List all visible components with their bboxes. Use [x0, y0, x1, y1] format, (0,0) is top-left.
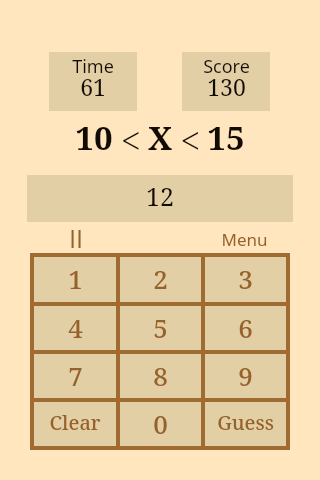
staticText: 130 [207, 71, 246, 99]
staticText: Time [72, 54, 114, 76]
staticText: 4 [68, 310, 83, 345]
staticText: 2 [153, 261, 168, 296]
button[interactable]: 7 [34, 354, 116, 398]
staticText: 6 [238, 310, 253, 345]
staticText: 7 [68, 358, 83, 393]
button[interactable]: 12 [27, 175, 293, 222]
staticText: 8 [153, 358, 168, 393]
button[interactable]: 3 [205, 257, 286, 302]
staticText: 3 [238, 261, 253, 296]
button[interactable]: Menu [218, 227, 270, 251]
staticText: 9 [238, 358, 253, 393]
staticText: Clear [49, 409, 101, 436]
staticText: 0 [153, 406, 168, 441]
button[interactable]: Time [49, 52, 137, 111]
staticText: 5 [153, 310, 168, 345]
button[interactable]: 6 [205, 306, 286, 350]
button[interactable]: Clear [34, 402, 116, 446]
button[interactable]: 5 [120, 306, 201, 350]
button[interactable]: Pause [52, 225, 100, 252]
staticText: Guess [217, 409, 274, 436]
staticText: 1 [68, 261, 83, 296]
staticText: 61 [80, 71, 106, 99]
button[interactable]: Guess [205, 402, 286, 446]
button[interactable]: 2 [120, 257, 201, 302]
staticText: 12 [146, 179, 174, 213]
button[interactable]: 4 [34, 306, 116, 350]
button[interactable]: Score [182, 52, 270, 111]
staticText: Score [203, 54, 250, 76]
button[interactable]: 9 [205, 354, 286, 398]
button[interactable]: 0 [120, 402, 201, 446]
button[interactable]: 1 [34, 257, 116, 302]
staticText: Menu [221, 228, 268, 251]
button[interactable]: 8 [120, 354, 201, 398]
staticText: 10 < X < 15 [75, 115, 245, 153]
